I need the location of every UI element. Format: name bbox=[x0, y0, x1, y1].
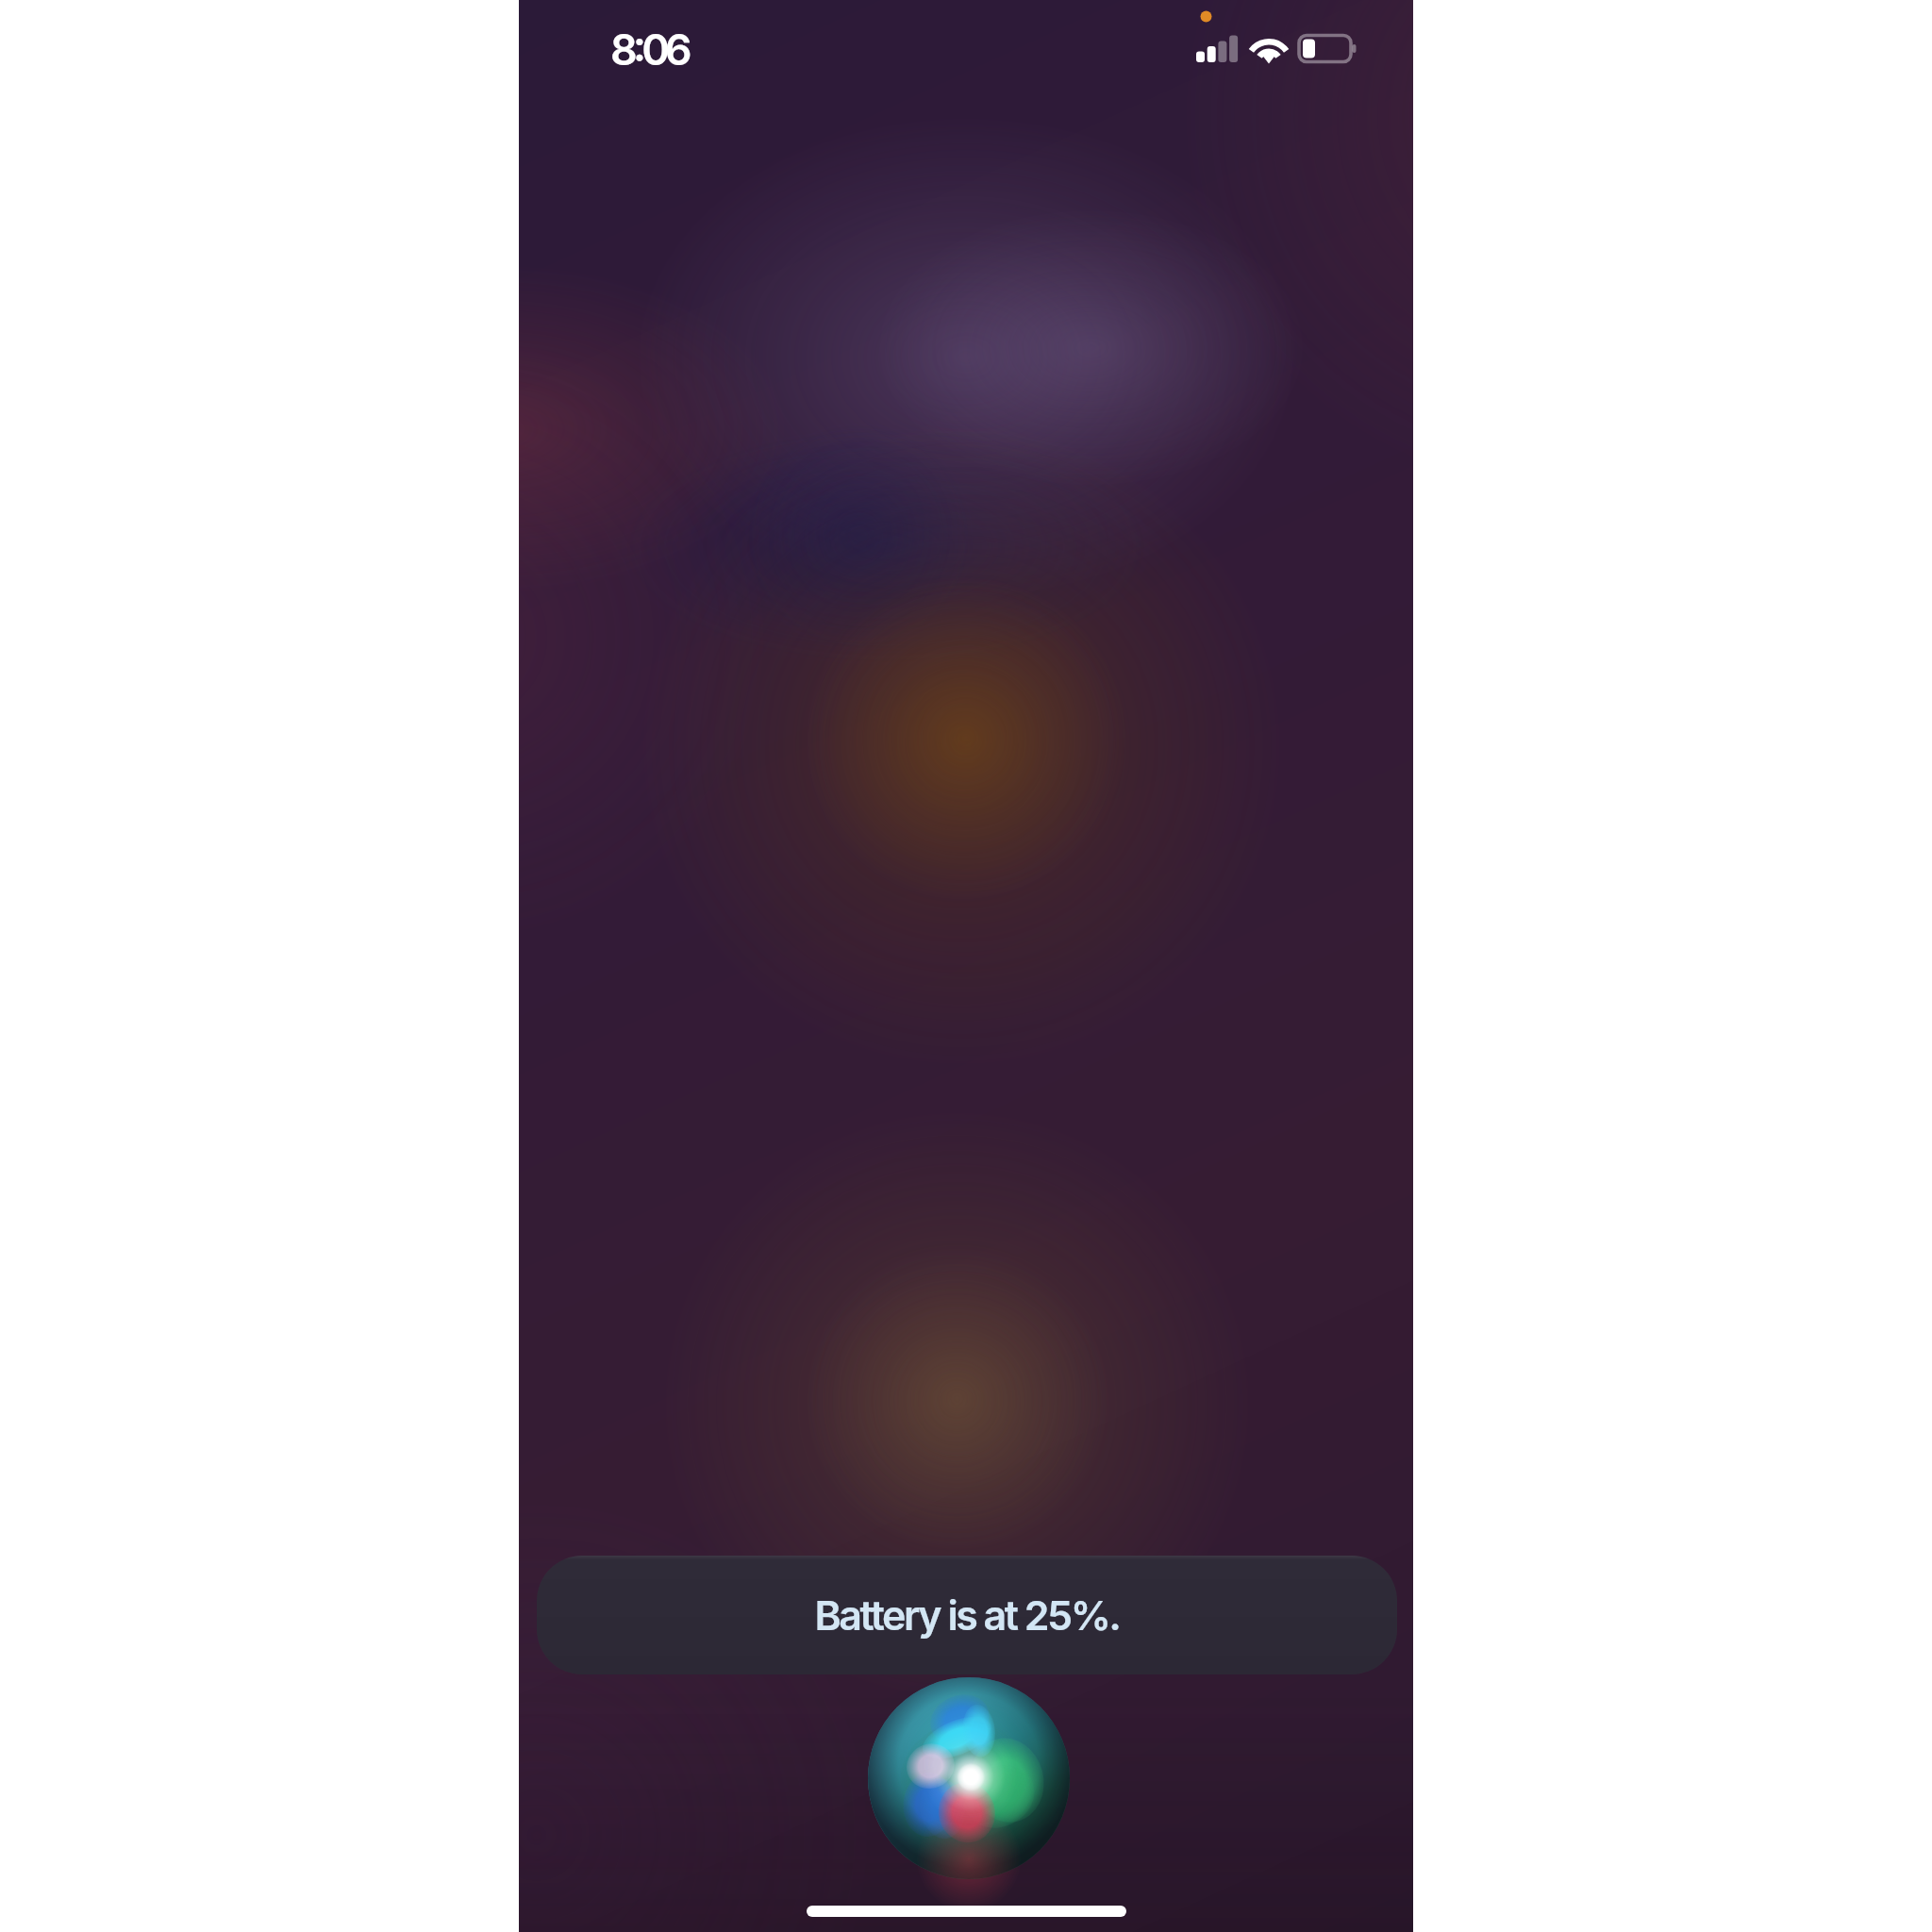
staticText: Battery is at 25%. bbox=[814, 1591, 1120, 1640]
button[interactable]: Siri bbox=[868, 1677, 1070, 1879]
button[interactable]: Battery is at 25%. bbox=[537, 1556, 1397, 1674]
staticText: 8:06 bbox=[610, 24, 688, 75]
